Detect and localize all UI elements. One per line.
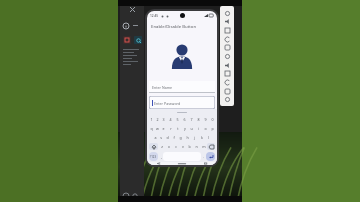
- button[interactable]: Period: [201, 152, 205, 161]
- button[interactable]: Zoom: [223, 61, 231, 69]
- button[interactable]: Backspace: [207, 143, 215, 150]
- button[interactable]: ?123: [149, 152, 158, 161]
- staticText: p: [211, 126, 214, 131]
- button[interactable]: u: [188, 125, 195, 132]
- staticText: l: [208, 135, 209, 140]
- staticText: 12:45: [150, 14, 159, 18]
- staticText: 3: [162, 117, 165, 122]
- staticText: i: [198, 126, 199, 131]
- staticText: t: [177, 126, 179, 131]
- button[interactable]: o: [202, 125, 209, 132]
- button[interactable]: a: [152, 134, 158, 141]
- button[interactable]: v: [179, 143, 186, 150]
- staticText: 9: [204, 117, 207, 122]
- staticText: f: [173, 135, 175, 140]
- staticText: r: [170, 126, 172, 131]
- button[interactable]: 9: [202, 116, 209, 123]
- button[interactable]: Inspect: [134, 36, 142, 44]
- staticText: o: [204, 126, 207, 131]
- button[interactable]: Shift: [149, 143, 158, 150]
- staticText: c: [175, 144, 177, 149]
- staticText: 2: [156, 117, 159, 122]
- button[interactable]: q: [148, 125, 154, 132]
- button[interactable]: 8: [195, 116, 202, 123]
- button[interactable]: 1: [148, 116, 154, 123]
- button[interactable]: Power: [223, 9, 231, 17]
- staticText: ,: [161, 154, 162, 159]
- staticText: z: [161, 144, 163, 149]
- button[interactable]: l: [205, 134, 212, 141]
- button[interactable]: z: [158, 143, 165, 150]
- button[interactable]: 4: [167, 116, 174, 123]
- staticText: v: [182, 144, 184, 149]
- staticText: x: [168, 144, 170, 149]
- staticText: 1: [150, 117, 153, 122]
- button[interactable]: Volume up: [223, 17, 231, 25]
- staticText: h: [186, 135, 189, 140]
- staticText: 6: [183, 117, 186, 122]
- staticText: .: [203, 154, 204, 159]
- button[interactable]: Enter Password: [149, 96, 215, 109]
- button[interactable]: m: [200, 143, 207, 150]
- staticText: ?123: [150, 155, 157, 159]
- button[interactable]: g: [177, 134, 184, 141]
- staticText: k: [201, 135, 203, 140]
- staticText: 5: [176, 117, 179, 122]
- button[interactable]: Enter Name: [149, 81, 215, 93]
- staticText: m: [202, 144, 206, 149]
- staticText: Enter Name: [152, 85, 173, 90]
- staticText: w: [156, 126, 159, 131]
- staticText: 0: [211, 117, 214, 122]
- button[interactable]: f: [170, 134, 177, 141]
- staticText: d: [166, 135, 169, 140]
- staticText: Enter Password: [154, 101, 181, 106]
- button[interactable]: Screenshot: [223, 52, 231, 60]
- staticText: a: [154, 135, 157, 140]
- button[interactable]: 2: [154, 116, 160, 123]
- button[interactable]: 3: [160, 116, 167, 123]
- button[interactable]: i: [195, 125, 202, 132]
- button[interactable]: k: [198, 134, 205, 141]
- button[interactable]: c: [172, 143, 179, 150]
- button[interactable]: Volume down: [223, 26, 231, 34]
- button[interactable]: Comma: [159, 152, 163, 161]
- button[interactable]: Rotate left: [223, 35, 231, 43]
- button[interactable]: 7: [188, 116, 195, 123]
- button[interactable]: w: [154, 125, 160, 132]
- button[interactable]: Enter: [206, 152, 215, 161]
- staticText: e: [162, 126, 165, 131]
- button[interactable]: e: [160, 125, 167, 132]
- button[interactable]: x: [165, 143, 172, 150]
- button[interactable]: h: [184, 134, 191, 141]
- button[interactable]: Info: [122, 22, 129, 29]
- button[interactable]: Back: [223, 69, 231, 77]
- button[interactable]: More: [223, 95, 231, 103]
- staticText: Enable/Disable Button: [151, 23, 197, 29]
- button[interactable]: Home: [223, 78, 231, 86]
- button[interactable]: Rotate right: [223, 43, 231, 51]
- button[interactable]: Recents: [223, 87, 231, 95]
- staticText: q: [150, 126, 153, 131]
- button[interactable]: 6: [181, 116, 188, 123]
- button[interactable]: n: [193, 143, 200, 150]
- button[interactable]: j: [191, 134, 198, 141]
- staticText: s: [160, 135, 162, 140]
- button[interactable]: t: [174, 125, 181, 132]
- button[interactable]: 5: [174, 116, 181, 123]
- staticText: u: [190, 126, 193, 131]
- button[interactable]: Close: [127, 4, 137, 14]
- button[interactable]: s: [158, 134, 164, 141]
- button[interactable]: b: [186, 143, 193, 150]
- staticText: g: [179, 135, 182, 140]
- staticText: n: [195, 144, 198, 149]
- button[interactable]: y: [181, 125, 188, 132]
- staticText: y: [184, 126, 186, 131]
- button[interactable]: p: [209, 125, 216, 132]
- button[interactable]: d: [164, 134, 170, 141]
- staticText: 7: [190, 117, 193, 122]
- staticText: j: [194, 135, 195, 140]
- button[interactable]: Stop: [123, 36, 131, 44]
- button[interactable]: r: [167, 125, 174, 132]
- button[interactable]: 0: [209, 116, 216, 123]
